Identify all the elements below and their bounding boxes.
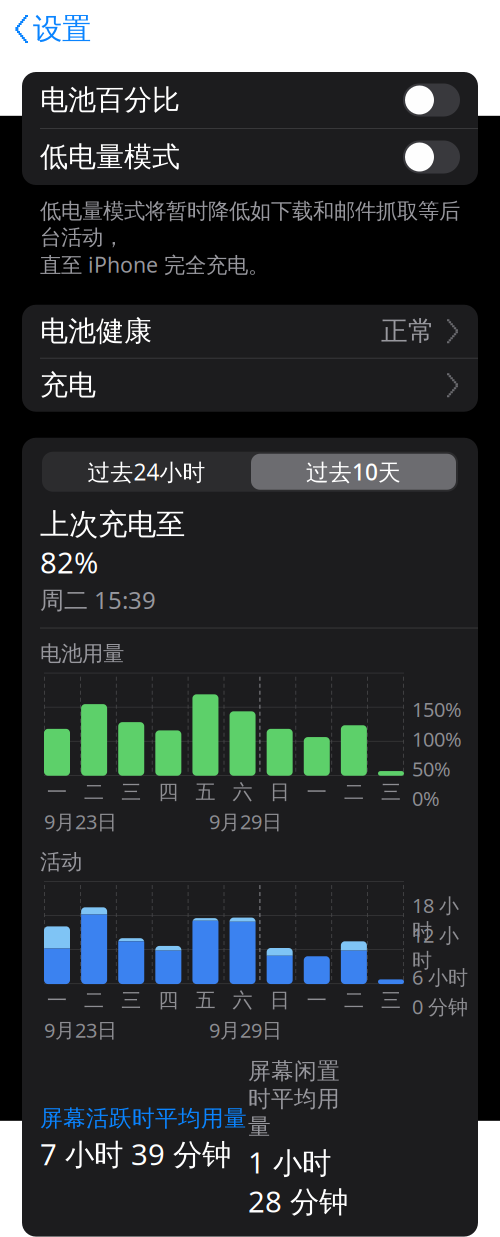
staticText: 9月23日: [44, 808, 117, 835]
staticText: 9月29日: [209, 808, 282, 835]
staticText: 三: [121, 780, 141, 804]
staticText: 一: [47, 988, 67, 1013]
staticText: 三: [121, 988, 141, 1013]
staticText: 日: [270, 988, 290, 1013]
staticText: 低电量模式: [40, 140, 180, 174]
staticText: 三: [381, 988, 401, 1013]
staticText: 上次充电至 82%: [40, 504, 185, 582]
staticText: 二: [344, 780, 364, 804]
staticText: 五: [195, 988, 215, 1013]
staticText: 电池健康: [40, 314, 152, 348]
staticText: 五: [195, 780, 215, 804]
staticText: 0 分钟: [412, 993, 468, 1020]
staticText: 二: [84, 988, 104, 1013]
staticText: 周二 15:39: [40, 584, 156, 615]
staticText: 7 小时 39 分钟: [40, 1134, 231, 1173]
staticText: 6 小时: [412, 964, 468, 990]
staticText: 一: [307, 780, 327, 804]
staticText: 18 小时: [412, 892, 459, 943]
staticText: 一: [307, 988, 327, 1013]
staticText: 9月23日: [44, 1017, 117, 1043]
button[interactable]: 电池健康: [22, 305, 478, 359]
staticText: 50%: [412, 755, 451, 782]
staticText: 屏幕活跃时平均用量: [40, 1104, 247, 1132]
button[interactable]: 低电量模式: [22, 129, 478, 185]
staticText: 过去10天: [306, 457, 401, 487]
button[interactable]: 过去24小时: [42, 452, 458, 492]
staticText: 四: [158, 780, 178, 804]
staticText: 12 小时: [412, 922, 459, 973]
staticText: 电池用量: [40, 640, 124, 667]
staticText: 1 小时 28 分钟: [248, 1143, 348, 1221]
button[interactable]: 充电: [22, 359, 478, 412]
staticText: 低电量模式将暂时降低如下载和邮件抓取等后台活动， 直至 iPhone 完全充电。: [40, 198, 460, 279]
staticText: 六: [233, 780, 253, 804]
staticText: 电池: [221, 11, 279, 47]
staticText: 活动: [40, 849, 82, 875]
staticText: 六: [233, 988, 253, 1013]
button[interactable]: 电池百分比: [22, 72, 478, 129]
staticText: 9月29日: [209, 1017, 282, 1043]
button[interactable]: 设置: [0, 5, 91, 53]
staticText: 100%: [412, 726, 462, 752]
staticText: 电池百分比: [40, 83, 180, 117]
staticText: 一: [47, 780, 67, 804]
staticText: 设置: [33, 11, 91, 47]
staticText: 充电: [40, 368, 96, 402]
staticText: 三: [381, 780, 401, 804]
staticText: 屏幕闲置时平均用量: [248, 1057, 340, 1141]
staticText: 日: [270, 780, 290, 804]
staticText: 过去24小时: [87, 457, 205, 487]
staticText: 150%: [412, 696, 462, 723]
staticText: 0%: [412, 785, 440, 812]
staticText: 四: [158, 988, 178, 1013]
staticText: 正常: [381, 315, 435, 348]
staticText: 二: [344, 988, 364, 1013]
staticText: 二: [84, 780, 104, 804]
